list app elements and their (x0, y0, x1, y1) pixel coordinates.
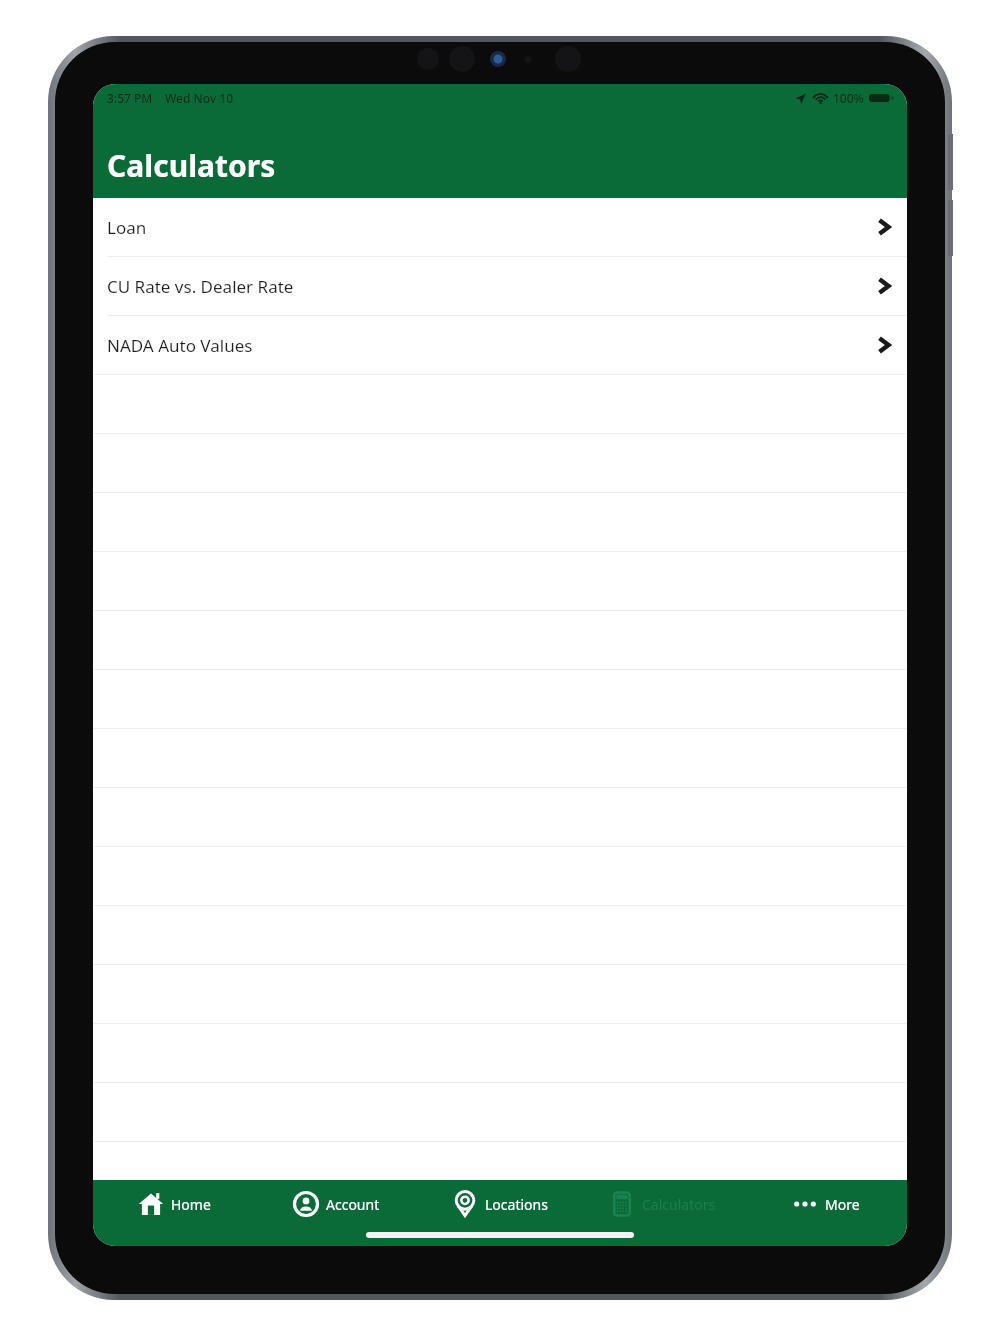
button[interactable]: CU Rate vs. Dealer Rate (93, 257, 907, 315)
button[interactable]: Locations (418, 1180, 581, 1228)
staticText: Account (326, 1195, 380, 1214)
staticText: Locations (485, 1195, 548, 1214)
staticText: 100% (833, 90, 864, 106)
button[interactable]: Loan (93, 198, 907, 256)
staticText: Calculators (642, 1195, 716, 1214)
staticText: More (825, 1195, 860, 1214)
staticText: Calculators (107, 145, 276, 186)
button[interactable]: Calculators (581, 1180, 744, 1228)
staticText: NADA Auto Values (107, 334, 253, 357)
button[interactable]: More (744, 1180, 907, 1228)
staticText: CU Rate vs. Dealer Rate (107, 275, 294, 298)
staticText: 3:57 PM (107, 90, 153, 106)
staticText: Home (171, 1195, 211, 1214)
staticText: Loan (107, 216, 147, 239)
staticText: Wed Nov 10 (165, 90, 234, 106)
button[interactable]: NADA Auto Values (93, 316, 907, 374)
button[interactable]: Account (255, 1180, 418, 1228)
button[interactable]: Home (93, 1180, 255, 1228)
